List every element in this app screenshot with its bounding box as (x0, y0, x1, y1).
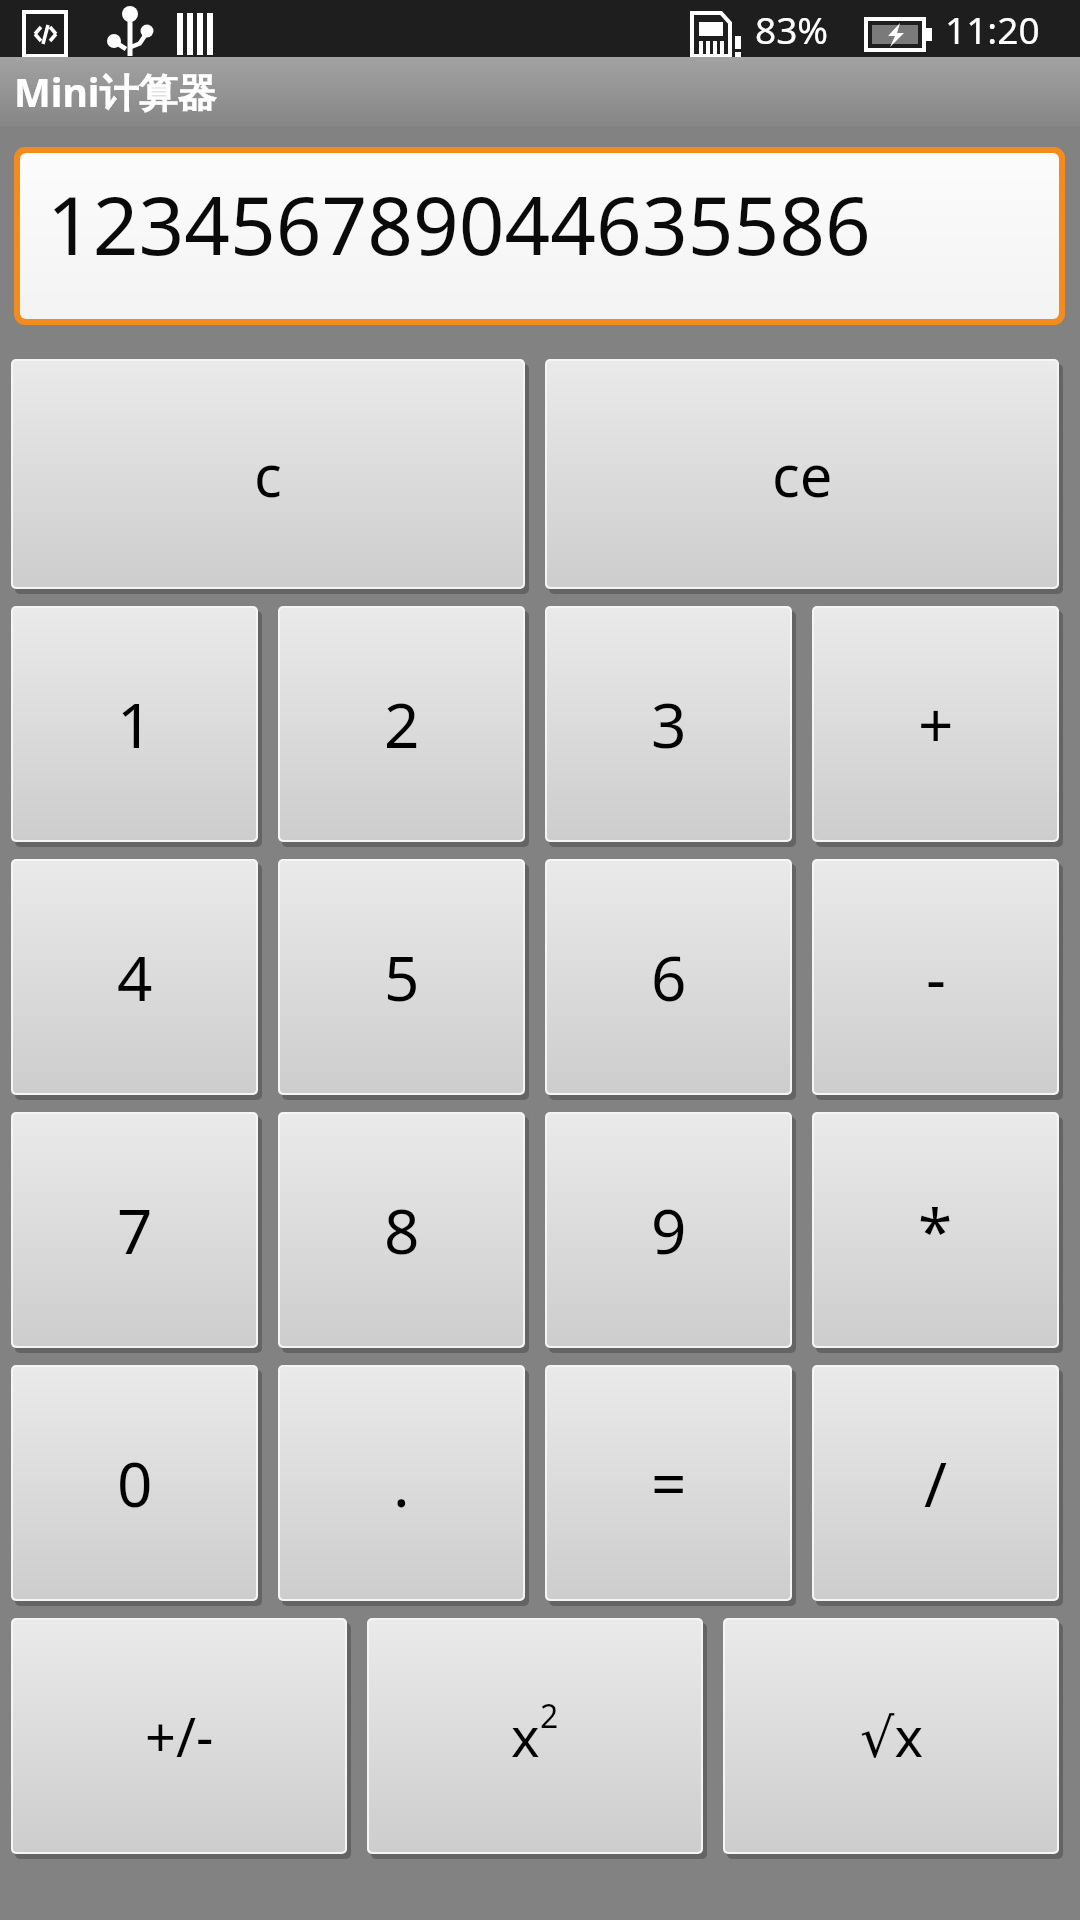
button[interactable]: 5 (280, 861, 523, 1093)
button[interactable]: 0 (13, 1367, 256, 1599)
button[interactable]: + (814, 608, 1057, 840)
staticText: 7 (117, 1188, 153, 1272)
staticText: 83% (755, 4, 829, 54)
staticText: 11:20 (945, 4, 1040, 54)
staticText: 8 (384, 1188, 420, 1272)
staticText: 1 (117, 682, 153, 766)
button[interactable]: ce (547, 361, 1057, 587)
staticText: √x (860, 1699, 923, 1773)
button[interactable]: 8 (280, 1114, 523, 1346)
button[interactable]: c (13, 361, 523, 587)
staticText: - (926, 935, 946, 1019)
staticText: 3 (651, 682, 687, 766)
button[interactable]: 1 (13, 608, 256, 840)
button[interactable]: 9 (547, 1114, 790, 1346)
staticText: = (651, 1441, 687, 1525)
staticText: 5 (384, 935, 420, 1019)
button[interactable]: - (814, 861, 1057, 1093)
button[interactable]: 123456789044635586 (20, 153, 1059, 319)
staticText: x (511, 1699, 540, 1773)
button[interactable]: * (814, 1114, 1057, 1346)
staticText: 0 (117, 1441, 153, 1525)
button[interactable]: = (547, 1367, 790, 1599)
staticText: + (918, 682, 954, 766)
button[interactable]: x (369, 1620, 701, 1852)
staticText: Mini计算器 (14, 65, 217, 118)
staticText: ce (772, 435, 833, 514)
staticText: 2 (384, 682, 420, 766)
button[interactable]: / (814, 1367, 1057, 1599)
button[interactable]: 6 (547, 861, 790, 1093)
button[interactable]: √x (725, 1620, 1057, 1852)
button[interactable]: +/- (13, 1620, 345, 1852)
button[interactable]: 2 (280, 608, 523, 840)
staticText: * (918, 1188, 953, 1272)
button[interactable]: . (280, 1367, 523, 1599)
staticText: c (254, 435, 282, 514)
staticText: 2 (540, 1694, 559, 1738)
button[interactable]: 7 (13, 1114, 256, 1346)
button[interactable]: 4 (13, 861, 256, 1093)
staticText: . (393, 1441, 410, 1525)
staticText: 9 (651, 1188, 687, 1272)
button[interactable]: 3 (547, 608, 790, 840)
staticText: 123456789044635586 (47, 169, 871, 278)
staticText: / (924, 1441, 948, 1525)
staticText: +/- (145, 1699, 214, 1773)
staticText: 4 (117, 935, 153, 1019)
staticText: 6 (651, 935, 687, 1019)
